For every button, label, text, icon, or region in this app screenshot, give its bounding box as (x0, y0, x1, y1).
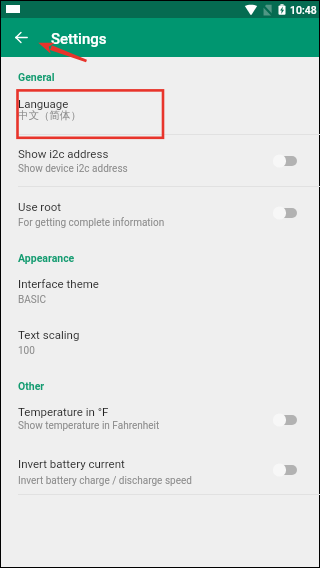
button[interactable]: Show i2c address (271, 152, 300, 170)
button[interactable]: Use root (1, 187, 319, 238)
staticText: Text scaling (18, 328, 80, 341)
button[interactable]: Interface theme (1, 269, 319, 313)
button[interactable]: Temperature in F (1, 397, 319, 444)
staticText: Show device i2c address (18, 163, 128, 175)
staticText: Temperature in °F (18, 405, 109, 418)
button[interactable]: Show i2c address (1, 135, 319, 186)
button[interactable]: Temperature in Fahrenheit (271, 411, 300, 429)
staticText: For getting complete information (18, 217, 165, 229)
staticText: 10:48 (290, 4, 317, 16)
button[interactable]: Invert battery current (271, 461, 300, 479)
staticText: Interface theme (18, 277, 99, 290)
staticText: BASIC (18, 294, 46, 306)
staticText: Appearance (18, 252, 75, 264)
staticText: Show i2c address (18, 147, 109, 160)
staticText: Show temperature in Fahrenheit (18, 420, 160, 432)
staticText: Invert battery current (18, 457, 125, 470)
staticText: Use root (18, 200, 62, 213)
staticText: Language (18, 97, 69, 110)
staticText: 中文（简体） (18, 109, 81, 122)
button[interactable]: Back (1, 18, 41, 57)
staticText: Other (18, 380, 45, 392)
staticText: General (18, 71, 55, 83)
button[interactable]: Text scaling (1, 314, 319, 359)
staticText: Invert battery charge / discharge speed (18, 475, 192, 487)
button[interactable]: Use root (271, 204, 300, 222)
staticText: Settings (51, 30, 107, 48)
button[interactable]: Invert battery current (1, 445, 319, 495)
staticText: 100 (18, 345, 35, 357)
button[interactable]: Language (1, 89, 319, 134)
